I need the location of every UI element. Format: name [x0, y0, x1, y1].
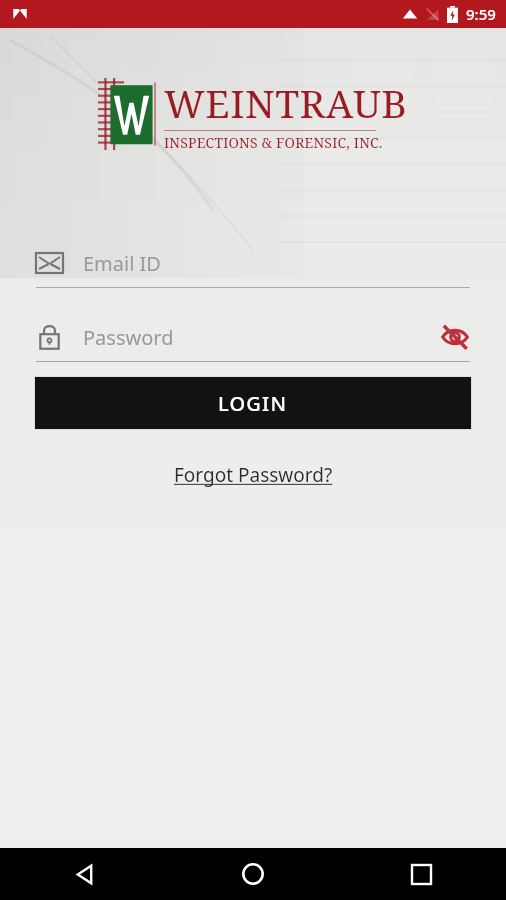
button[interactable]: Home — [168, 848, 337, 900]
button[interactable]: Back — [0, 848, 168, 900]
staticText: WEINTRAUB — [164, 76, 408, 129]
button[interactable]: Show password — [440, 322, 470, 352]
staticText: Email ID — [83, 250, 161, 277]
other: Password — [36, 323, 63, 351]
staticText: LOGIN — [218, 390, 288, 417]
button[interactable]: Password — [36, 313, 470, 362]
button[interactable]: Email — [36, 239, 470, 288]
button[interactable]: LOGIN — [35, 377, 471, 429]
other: Email — [36, 253, 63, 273]
button[interactable]: Forgot Password? — [162, 458, 345, 492]
button[interactable]: Recent apps — [337, 848, 506, 900]
staticText: INSPECTIONS & FORENSIC, INC. — [164, 133, 383, 152]
staticText: Password — [83, 324, 174, 351]
staticText: Forgot Password? — [174, 462, 333, 488]
staticText: 9:59 — [466, 4, 496, 24]
